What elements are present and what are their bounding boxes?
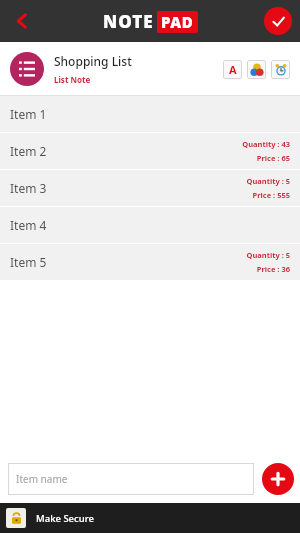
button[interactable]: List type xyxy=(10,52,44,86)
staticText: Shopping List xyxy=(54,53,132,69)
staticText: Item name xyxy=(16,472,68,486)
button[interactable]: Item name xyxy=(8,463,254,495)
button[interactable]: Item 3 xyxy=(0,170,300,206)
staticText: Item 2 xyxy=(10,143,242,159)
button[interactable]: Add item xyxy=(262,463,294,495)
button[interactable]: Item 2 xyxy=(0,133,300,169)
staticText: Price : 555 xyxy=(252,190,290,200)
staticText: NOTE xyxy=(103,10,154,33)
staticText: Make Secure xyxy=(36,512,94,525)
staticText: List Note xyxy=(54,74,91,85)
button[interactable]: Item 5 xyxy=(0,244,300,280)
staticText: Price : 65 xyxy=(256,153,290,163)
staticText: Price : 36 xyxy=(256,264,290,274)
button[interactable]: Save xyxy=(264,7,292,35)
button[interactable]: Reminder xyxy=(271,60,290,79)
button[interactable]: Text style xyxy=(223,60,242,79)
staticText: Item 3 xyxy=(10,180,246,196)
button[interactable]: Back xyxy=(0,0,44,42)
staticText: Item 4 xyxy=(10,217,290,233)
staticText: Item 1 xyxy=(10,106,290,122)
button[interactable]: Item 1 xyxy=(0,96,300,132)
button[interactable]: Item 4 xyxy=(0,207,300,243)
staticText: Item 5 xyxy=(10,254,246,270)
staticText: A xyxy=(229,62,237,77)
staticText: Quantity : 5 xyxy=(246,176,290,186)
button[interactable]: Colour xyxy=(247,60,266,79)
staticText: PAD xyxy=(161,12,194,32)
staticText: Quantity : 43 xyxy=(242,139,290,149)
button[interactable]: Make Secure xyxy=(0,503,300,533)
staticText: Quantity : 5 xyxy=(246,250,290,260)
